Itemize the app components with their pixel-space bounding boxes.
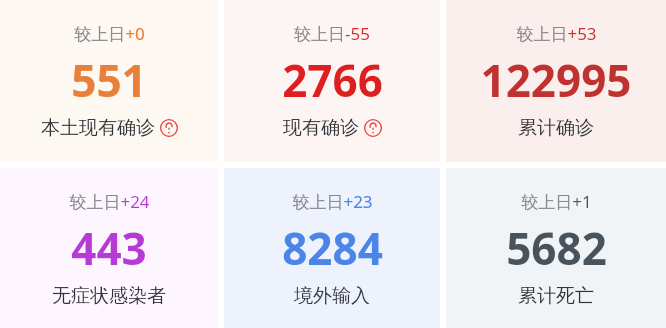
button[interactable]: 较上日+24 xyxy=(0,168,218,328)
staticText: 累计确诊 xyxy=(518,116,594,140)
button[interactable]: Help xyxy=(364,119,382,137)
staticText: 境外输入 xyxy=(294,284,370,308)
button[interactable]: Help xyxy=(160,119,178,137)
button[interactable]: 较上日+23 xyxy=(224,168,440,328)
staticText: 443 xyxy=(71,218,147,278)
staticText: 较上日+53 xyxy=(516,22,597,45)
button[interactable]: 较上日-55 xyxy=(224,0,440,162)
staticText: 现有确诊 xyxy=(283,116,359,140)
staticText: 5682 xyxy=(506,218,607,278)
staticText: 较上日+24 xyxy=(69,190,150,213)
staticText: 累计死亡 xyxy=(518,284,594,308)
staticText: 本土现有确诊 xyxy=(41,116,155,140)
button[interactable]: 较上日+0 xyxy=(0,0,218,162)
staticText: 8284 xyxy=(282,218,383,278)
staticText: 2766 xyxy=(282,50,383,110)
staticText: 无症状感染者 xyxy=(52,284,166,308)
staticText: 122995 xyxy=(480,50,632,110)
staticText: 较上日+23 xyxy=(292,190,373,213)
staticText: 551 xyxy=(71,50,147,110)
staticText: 较上日-55 xyxy=(294,22,370,45)
button[interactable]: 较上日+1 xyxy=(446,168,666,328)
staticText: 较上日+0 xyxy=(74,22,145,45)
staticText: 较上日+1 xyxy=(521,190,592,213)
button[interactable]: 较上日+53 xyxy=(446,0,666,162)
